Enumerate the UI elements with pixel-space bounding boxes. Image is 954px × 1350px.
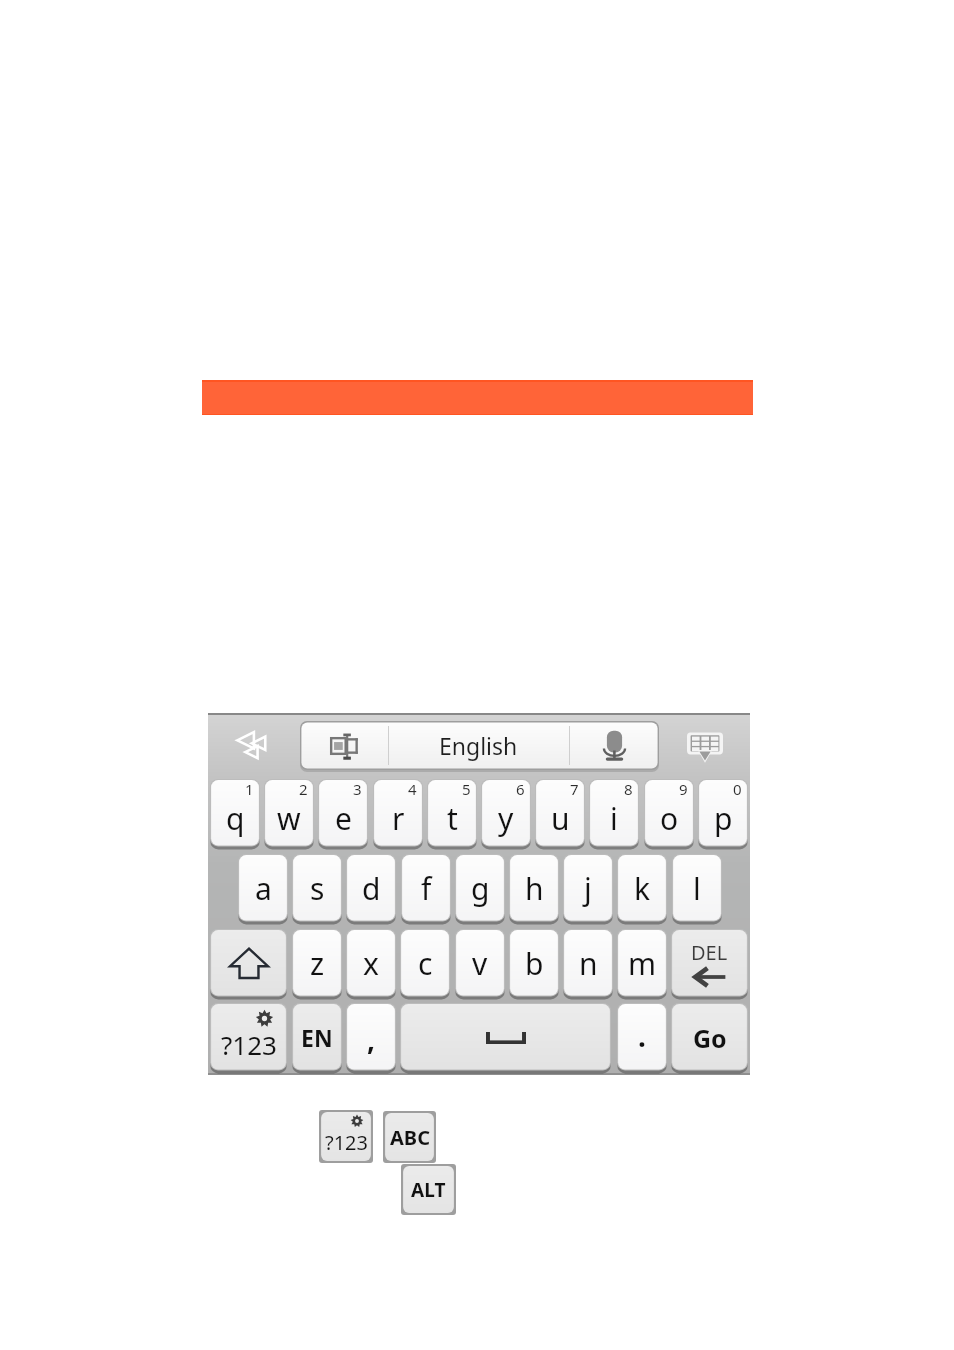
staticText: Go — [693, 1021, 727, 1055]
staticText: EN — [301, 1022, 333, 1053]
button[interactable]: . — [617, 1003, 667, 1072]
staticText: 5 — [462, 779, 471, 799]
button[interactable]: Delete — [671, 929, 748, 998]
staticText: h — [525, 868, 544, 909]
button[interactable]: Space — [400, 1003, 611, 1072]
button[interactable]: Switch input method — [300, 721, 388, 770]
staticText: 0 — [733, 779, 742, 799]
button[interactable]: 8 — [589, 779, 639, 848]
staticText: ABC — [390, 1124, 430, 1151]
button[interactable]: s — [292, 854, 342, 923]
button[interactable]: d — [346, 854, 396, 923]
staticText: c — [418, 943, 433, 984]
button[interactable]: 3 — [318, 779, 368, 848]
button[interactable]: ABC — [383, 1111, 436, 1163]
staticText: l — [693, 868, 701, 909]
staticText: v — [472, 943, 488, 984]
button[interactable]: 6 — [481, 779, 531, 848]
staticText: , — [367, 1020, 375, 1058]
button[interactable]: n — [563, 929, 613, 998]
button[interactable]: m — [617, 929, 667, 998]
button[interactable]: ALT — [401, 1164, 456, 1215]
button[interactable]: h — [509, 854, 559, 923]
button[interactable]: f — [401, 854, 451, 923]
staticText: z — [310, 943, 325, 984]
button[interactable]: Gesture typing — [208, 713, 300, 779]
staticText: b — [525, 943, 544, 984]
button[interactable]: 4 — [373, 779, 423, 848]
staticText: m — [628, 943, 657, 984]
staticText: 2 — [299, 779, 308, 799]
staticText: j — [584, 868, 592, 909]
button[interactable]: 7 — [535, 779, 585, 848]
staticText: ?123 — [325, 1129, 368, 1156]
button[interactable]: c — [400, 929, 450, 998]
staticText: f — [421, 868, 432, 909]
button[interactable]: ?123 — [319, 1110, 373, 1163]
button[interactable]: 9 — [644, 779, 694, 848]
button[interactable]: Voice input — [569, 721, 659, 770]
staticText: 6 — [516, 779, 525, 799]
button[interactable]: k — [617, 854, 667, 923]
button[interactable]: 1 — [210, 779, 260, 848]
staticText: 4 — [408, 779, 417, 799]
staticText: g — [471, 868, 490, 909]
staticText: t — [447, 798, 458, 839]
button[interactable]: Shift — [210, 929, 287, 998]
staticText: d — [362, 868, 381, 909]
staticText: q — [226, 798, 245, 839]
button[interactable]: 2 — [264, 779, 314, 848]
staticText: y — [498, 798, 514, 839]
button[interactable]: g — [455, 854, 505, 923]
staticText: English — [439, 730, 518, 761]
button[interactable]: l — [672, 854, 722, 923]
staticText: w — [277, 798, 301, 839]
staticText: n — [579, 943, 598, 984]
button[interactable]: j — [563, 854, 613, 923]
button[interactable]: , — [346, 1003, 396, 1072]
button[interactable]: z — [292, 929, 342, 998]
staticText: 9 — [679, 779, 688, 799]
staticText: 1 — [245, 779, 254, 799]
button[interactable]: 5 — [427, 779, 477, 848]
staticText: k — [634, 868, 651, 909]
button[interactable]: x — [346, 929, 396, 998]
staticText: s — [310, 868, 325, 909]
staticText: ALT — [411, 1177, 446, 1203]
staticText: 7 — [570, 779, 579, 799]
staticText: p — [714, 798, 733, 839]
button[interactable]: English — [388, 721, 569, 770]
staticText: a — [255, 868, 272, 909]
staticText: x — [363, 943, 379, 984]
button[interactable]: v — [455, 929, 505, 998]
button[interactable]: a — [238, 854, 288, 923]
button[interactable]: Go — [671, 1003, 748, 1072]
staticText: o — [660, 798, 679, 839]
staticText: r — [392, 798, 405, 839]
staticText: . — [638, 1017, 646, 1055]
staticText: u — [551, 798, 570, 839]
button[interactable]: ?123 — [210, 1003, 287, 1072]
staticText: i — [610, 798, 618, 839]
staticText: e — [335, 798, 352, 839]
staticText: 3 — [353, 779, 362, 799]
staticText: ?123 — [221, 1027, 277, 1062]
button[interactable]: EN — [292, 1003, 342, 1072]
staticText: 8 — [624, 779, 633, 799]
button[interactable]: Hide keyboard — [659, 713, 750, 779]
staticText: DEL — [691, 939, 728, 966]
button[interactable]: 0 — [698, 779, 748, 848]
button[interactable]: b — [509, 929, 559, 998]
